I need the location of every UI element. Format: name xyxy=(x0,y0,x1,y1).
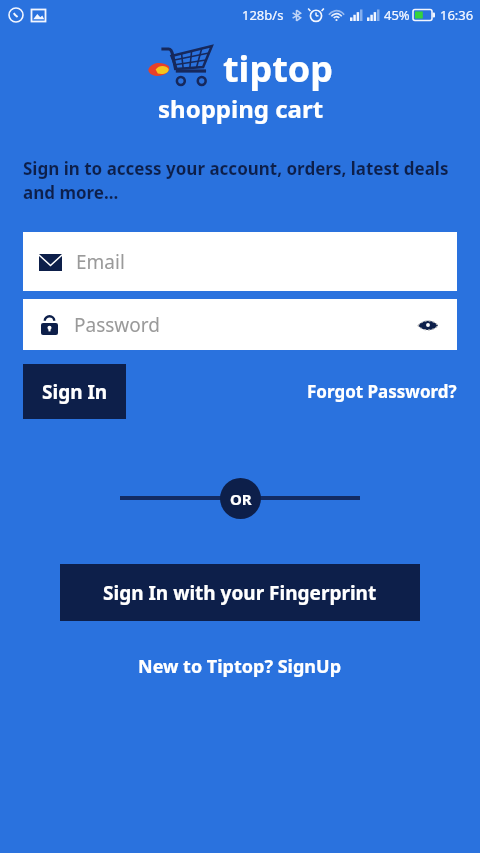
staticText: 128b/s xyxy=(242,6,284,24)
button[interactable]: Sign In with your Fingerprint xyxy=(60,564,420,621)
button[interactable]: Show password xyxy=(415,312,441,338)
staticText: Sign in to access your account, orders, … xyxy=(23,157,460,204)
staticText: Password xyxy=(74,312,160,338)
staticText: Forgot Password? xyxy=(307,380,457,403)
button[interactable]: Email xyxy=(23,232,457,291)
staticText: New to Tiptop? SignUp xyxy=(138,654,342,679)
staticText: OR xyxy=(230,489,252,509)
staticText: 45% xyxy=(384,6,410,24)
staticText: tiptop xyxy=(223,44,334,93)
staticText: 16:36 xyxy=(440,6,474,24)
button[interactable]: Password xyxy=(23,299,457,350)
button[interactable]: Sign In xyxy=(23,364,126,419)
button[interactable]: New to Tiptop? SignUp xyxy=(128,648,352,685)
staticText: Sign In xyxy=(42,379,108,405)
staticText: Email xyxy=(76,249,125,275)
button[interactable]: Forgot Password? xyxy=(304,374,460,409)
staticText: shopping cart xyxy=(158,92,324,125)
staticText: Sign In with your Fingerprint xyxy=(103,580,377,606)
